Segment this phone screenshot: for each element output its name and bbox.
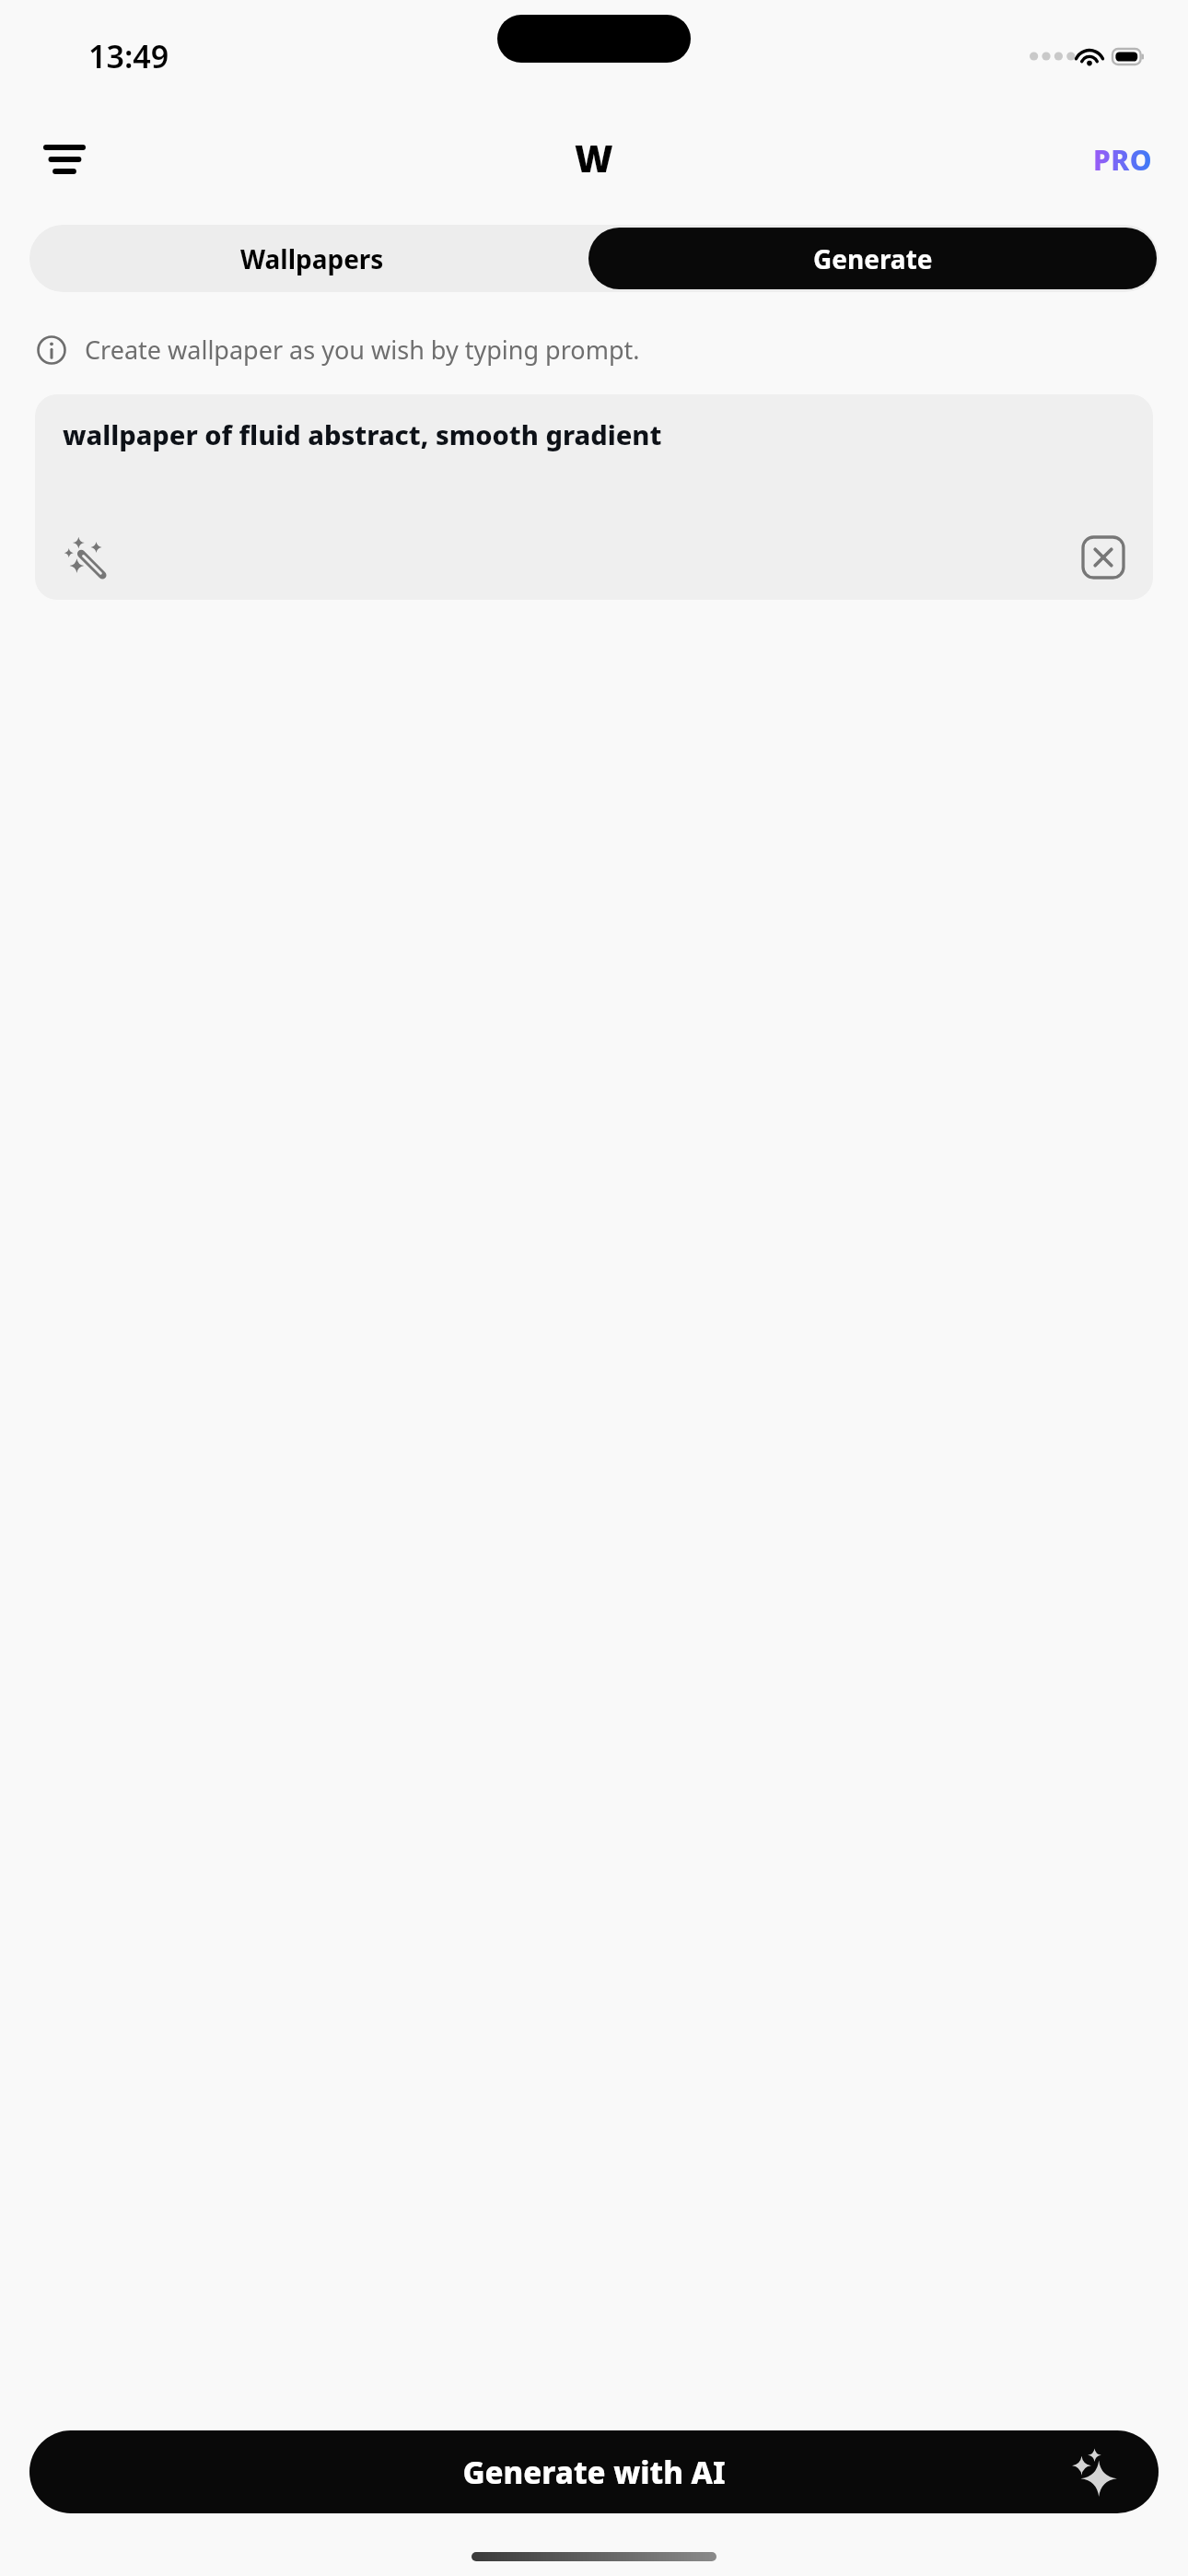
staticText: 13:49 <box>88 35 169 77</box>
button[interactable]: Clear prompt <box>1076 530 1131 585</box>
button[interactable]: Generate <box>588 228 1157 289</box>
button[interactable]: PRO <box>1082 132 1164 188</box>
staticText: wallpaper of fluid abstract, smooth grad… <box>63 416 662 452</box>
staticText: Create wallpaper as you wish by typing p… <box>85 333 640 367</box>
button[interactable]: Enhance prompt <box>57 528 114 585</box>
staticText: Generate with AI <box>462 2452 726 2493</box>
staticText: Wallpapers <box>240 241 384 276</box>
staticText: Generate <box>813 241 933 276</box>
button[interactable]: Wallpapers <box>29 225 594 292</box>
button[interactable]: wallpaper of fluid abstract, smooth grad… <box>35 394 1153 600</box>
staticText: PRO <box>1093 141 1153 179</box>
button[interactable]: Menu <box>29 124 99 194</box>
button[interactable]: Generate with AI <box>29 2430 1159 2513</box>
staticText: W <box>575 133 613 182</box>
